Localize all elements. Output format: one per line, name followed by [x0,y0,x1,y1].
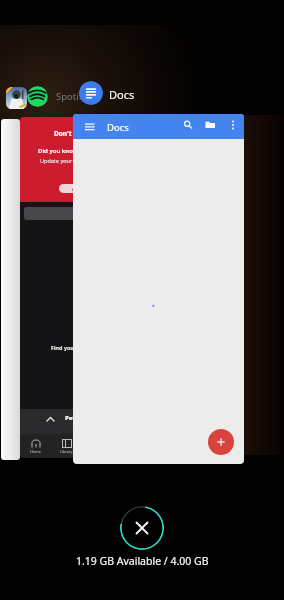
button[interactable] [182,119,194,131]
button[interactable]: Docs [73,114,244,464]
button[interactable] [120,506,164,550]
staticText: Docs [107,121,129,134]
button[interactable] [205,120,216,129]
staticText: Home [30,449,41,454]
staticText: Pet Sounds [65,414,99,422]
staticText: Spotify [56,90,87,103]
button[interactable]: Accept [59,184,101,193]
button[interactable] [208,429,234,455]
staticText: 1.19 GB Available / 4.00 GB [76,554,209,568]
button[interactable] [1,119,20,460]
staticText: Don't you [54,129,86,138]
button[interactable] [27,86,48,107]
button[interactable]: Docs [109,87,135,102]
staticText: Update your pay [40,157,83,164]
staticText: Library [60,449,73,454]
staticText: Accept [72,186,88,192]
staticText: Find your fav [51,344,86,351]
button[interactable]: Don't you [20,117,115,458]
button[interactable] [79,81,103,105]
button[interactable] [6,87,27,109]
button[interactable] [229,119,237,132]
staticText: Did you know [38,147,78,155]
